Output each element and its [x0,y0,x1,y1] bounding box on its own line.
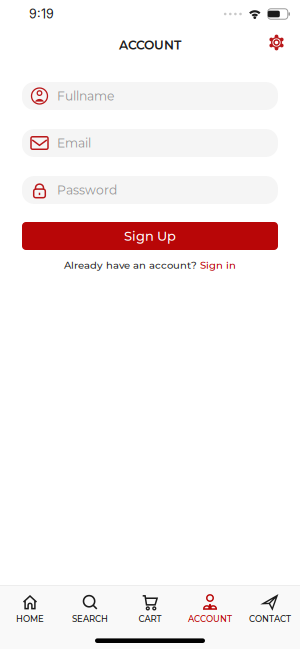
staticText: 9:19 [29,6,54,21]
staticText: Already have an account? [64,259,197,271]
staticText: CART [138,614,161,624]
button[interactable]: CONTACT [240,592,300,626]
button[interactable]: HOME [0,592,60,626]
staticText: SEARCH [72,614,108,624]
button[interactable]: Settings [268,34,300,56]
staticText: Email [57,135,91,150]
button[interactable]: Sign Up [22,222,278,250]
staticText: Sign Up [124,228,176,244]
staticText: CONTACT [249,614,291,624]
staticText: Sign in [200,259,236,271]
staticText: HOME [16,614,44,624]
staticText: ACCOUNT [119,37,181,52]
button[interactable]: SEARCH [60,592,120,626]
button[interactable]: Email [22,129,278,157]
staticText: ACCOUNT [188,614,232,624]
button[interactable]: Password [22,176,278,204]
button[interactable]: ACCOUNT [180,592,240,626]
button[interactable]: Sign in [200,259,236,271]
staticText: Fullname [57,88,114,103]
button[interactable]: Fullname [22,82,278,110]
staticText: Password [57,182,117,197]
button[interactable]: CART [120,592,180,626]
